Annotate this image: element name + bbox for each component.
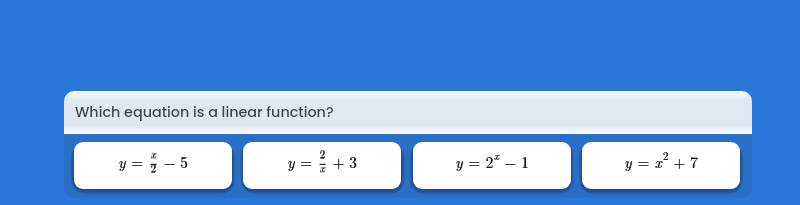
button[interactable]: Which equation is a linear function? xyxy=(64,91,752,134)
button[interactable] xyxy=(243,142,401,189)
button[interactable] xyxy=(74,142,232,189)
staticText: Which equation is a linear function? xyxy=(75,102,334,122)
button[interactable] xyxy=(413,142,571,189)
button[interactable] xyxy=(582,142,740,189)
